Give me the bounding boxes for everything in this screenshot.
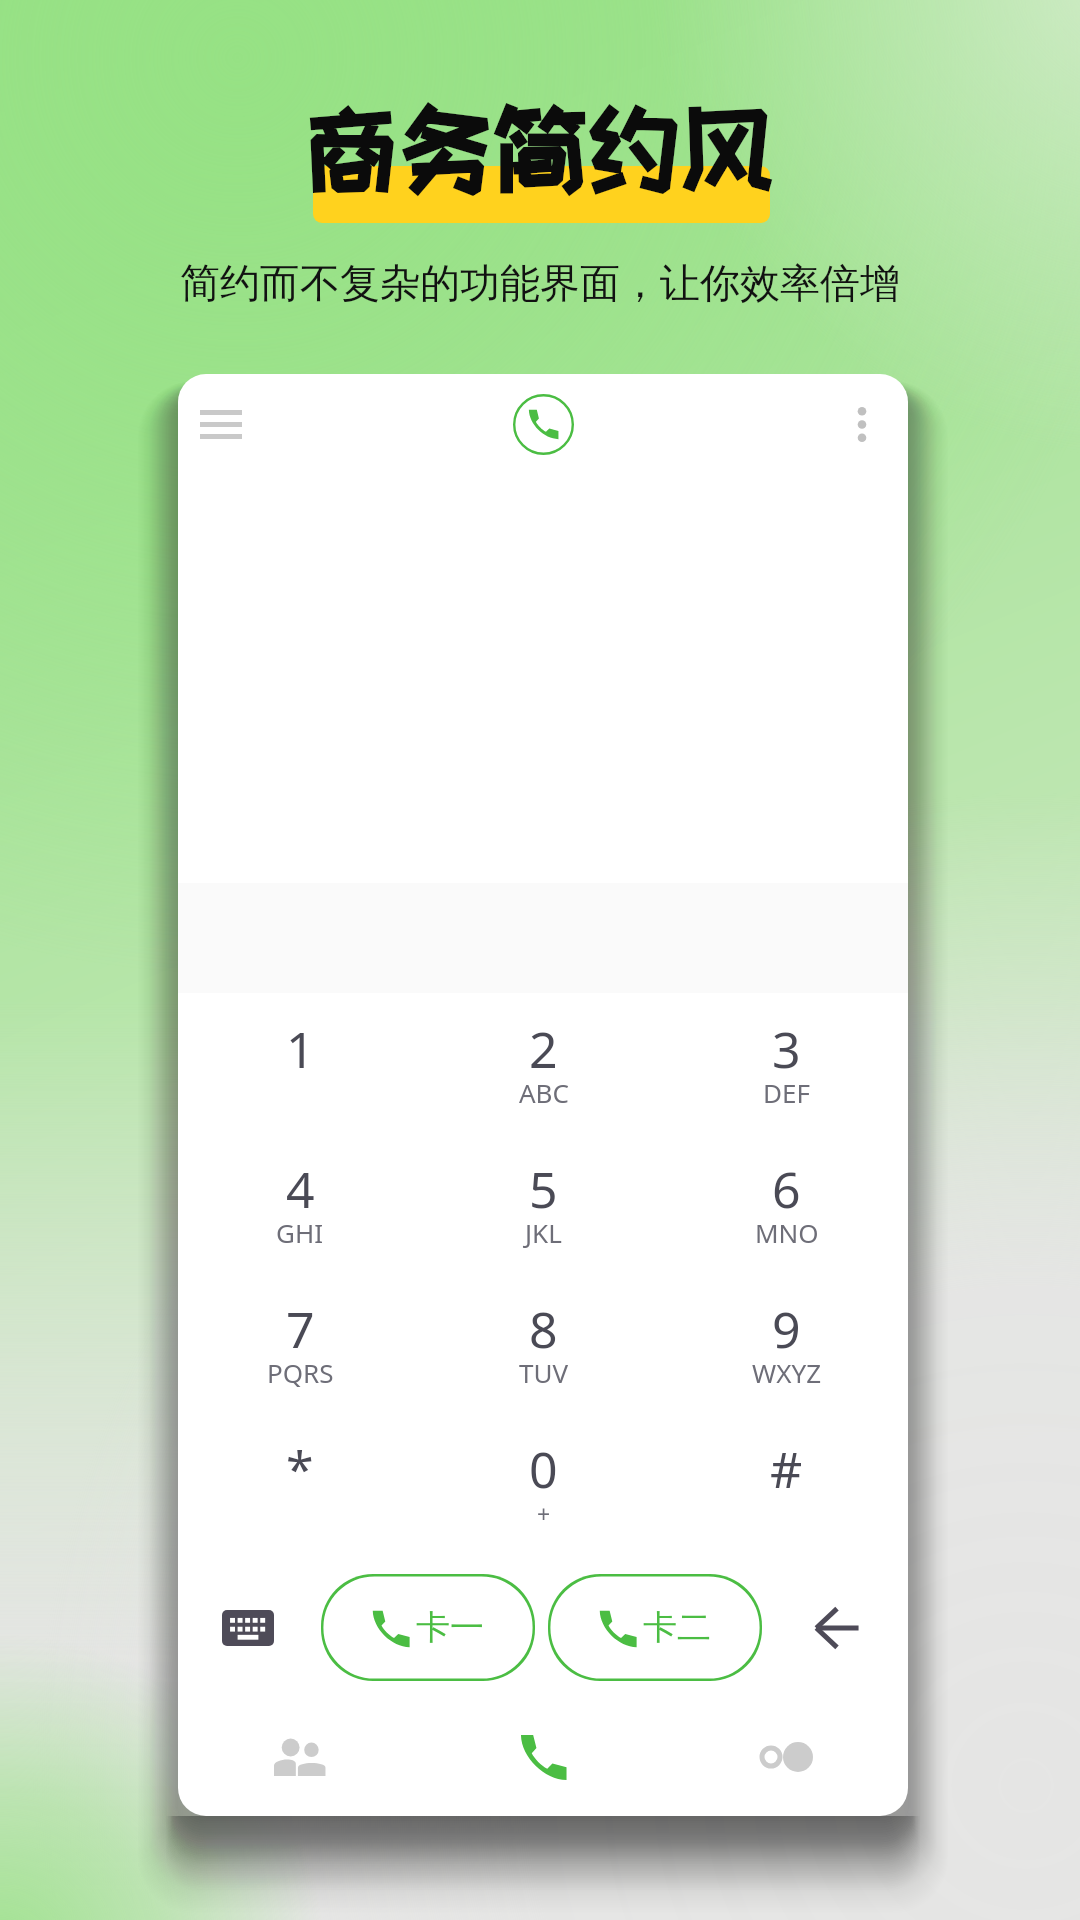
staticText: 1: [286, 1015, 315, 1083]
button[interactable]: *: [178, 1413, 422, 1553]
staticText: 6: [772, 1155, 801, 1223]
staticText: PQRS: [267, 1355, 334, 1390]
staticText: 2: [529, 1015, 558, 1083]
staticText: #: [770, 1435, 803, 1503]
staticText: 9: [772, 1295, 801, 1363]
button[interactable]: 6: [665, 1133, 908, 1273]
button[interactable]: Recents: [665, 1702, 908, 1812]
staticText: *: [286, 1435, 314, 1503]
button[interactable]: #: [665, 1413, 908, 1553]
staticText: 7: [286, 1295, 315, 1363]
button[interactable]: 7: [178, 1273, 422, 1413]
staticText: 8: [529, 1295, 558, 1363]
staticText: JKL: [525, 1215, 562, 1250]
button[interactable]: 3: [665, 993, 908, 1133]
staticText: 卡一: [416, 1606, 484, 1649]
button[interactable]: 卡二: [548, 1574, 762, 1681]
button[interactable]: 2: [422, 993, 665, 1133]
button[interactable]: Backspace: [797, 1588, 877, 1668]
staticText: 0: [529, 1435, 558, 1503]
button[interactable]: Dialer: [507, 388, 579, 460]
staticText: MNO: [755, 1215, 819, 1250]
staticText: DEF: [763, 1075, 810, 1110]
button[interactable]: 1: [178, 993, 422, 1133]
staticText: 3: [772, 1015, 801, 1083]
button[interactable]: 9: [665, 1273, 908, 1413]
staticText: TUV: [519, 1355, 569, 1390]
staticText: 4: [286, 1155, 315, 1223]
staticText: ABC: [519, 1075, 569, 1110]
button[interactable]: Contacts: [178, 1702, 422, 1812]
button[interactable]: Keyboard: [208, 1588, 288, 1668]
staticText: 商务简约风: [305, 96, 775, 198]
staticText: 卡二: [643, 1606, 711, 1649]
button[interactable]: Dialpad: [422, 1702, 665, 1812]
button[interactable]: More options: [826, 388, 898, 460]
button[interactable]: Menu: [178, 380, 265, 468]
staticText: +: [537, 1498, 551, 1529]
staticText: WXYZ: [752, 1355, 822, 1390]
staticText: 简约而不复杂的功能界面，让你效率倍增: [180, 258, 900, 308]
button[interactable]: 5: [422, 1133, 665, 1273]
button[interactable]: 4: [178, 1133, 422, 1273]
staticText: 5: [529, 1155, 558, 1223]
button[interactable]: 0: [422, 1413, 665, 1553]
button[interactable]: 8: [422, 1273, 665, 1413]
button[interactable]: 卡一: [321, 1574, 535, 1681]
staticText: GHI: [276, 1215, 324, 1250]
